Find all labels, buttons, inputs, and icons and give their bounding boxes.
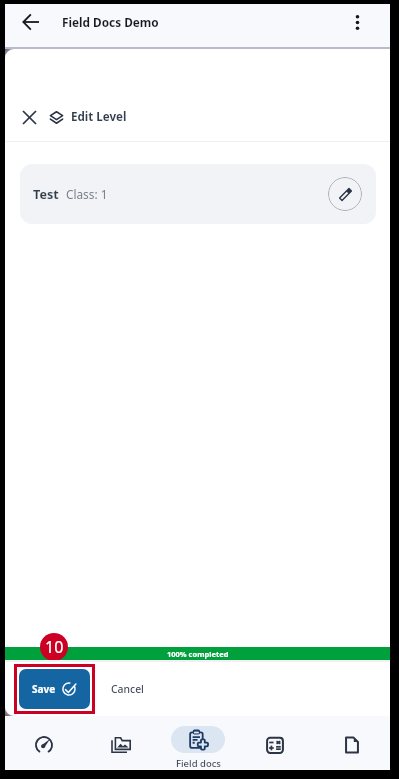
button[interactable]: Field docs <box>159 716 236 770</box>
button[interactable]: Back <box>16 7 46 37</box>
staticText: Field docs <box>176 757 221 770</box>
staticText: 10 <box>45 636 64 658</box>
button[interactable]: Edit Level <box>5 93 390 141</box>
button[interactable]: Save <box>19 669 90 709</box>
staticText: Class: 1 <box>66 186 108 202</box>
staticText: Cancel <box>111 682 144 696</box>
button[interactable]: Photos <box>82 716 159 770</box>
staticText: 100% completed <box>167 649 229 659</box>
staticText: Edit Level <box>71 109 127 125</box>
staticText: Save <box>32 682 56 696</box>
button[interactable]: Documents <box>313 716 390 770</box>
button[interactable]: Cancel <box>106 674 149 704</box>
button[interactable]: Dashboard <box>5 716 82 770</box>
button[interactable]: Test <box>20 164 376 224</box>
staticText: Test <box>33 186 59 203</box>
button[interactable]: Calculator <box>236 716 313 770</box>
staticText: Field Docs Demo <box>62 14 159 30</box>
button[interactable]: More options <box>343 8 371 36</box>
button[interactable]: Edit <box>328 177 362 211</box>
